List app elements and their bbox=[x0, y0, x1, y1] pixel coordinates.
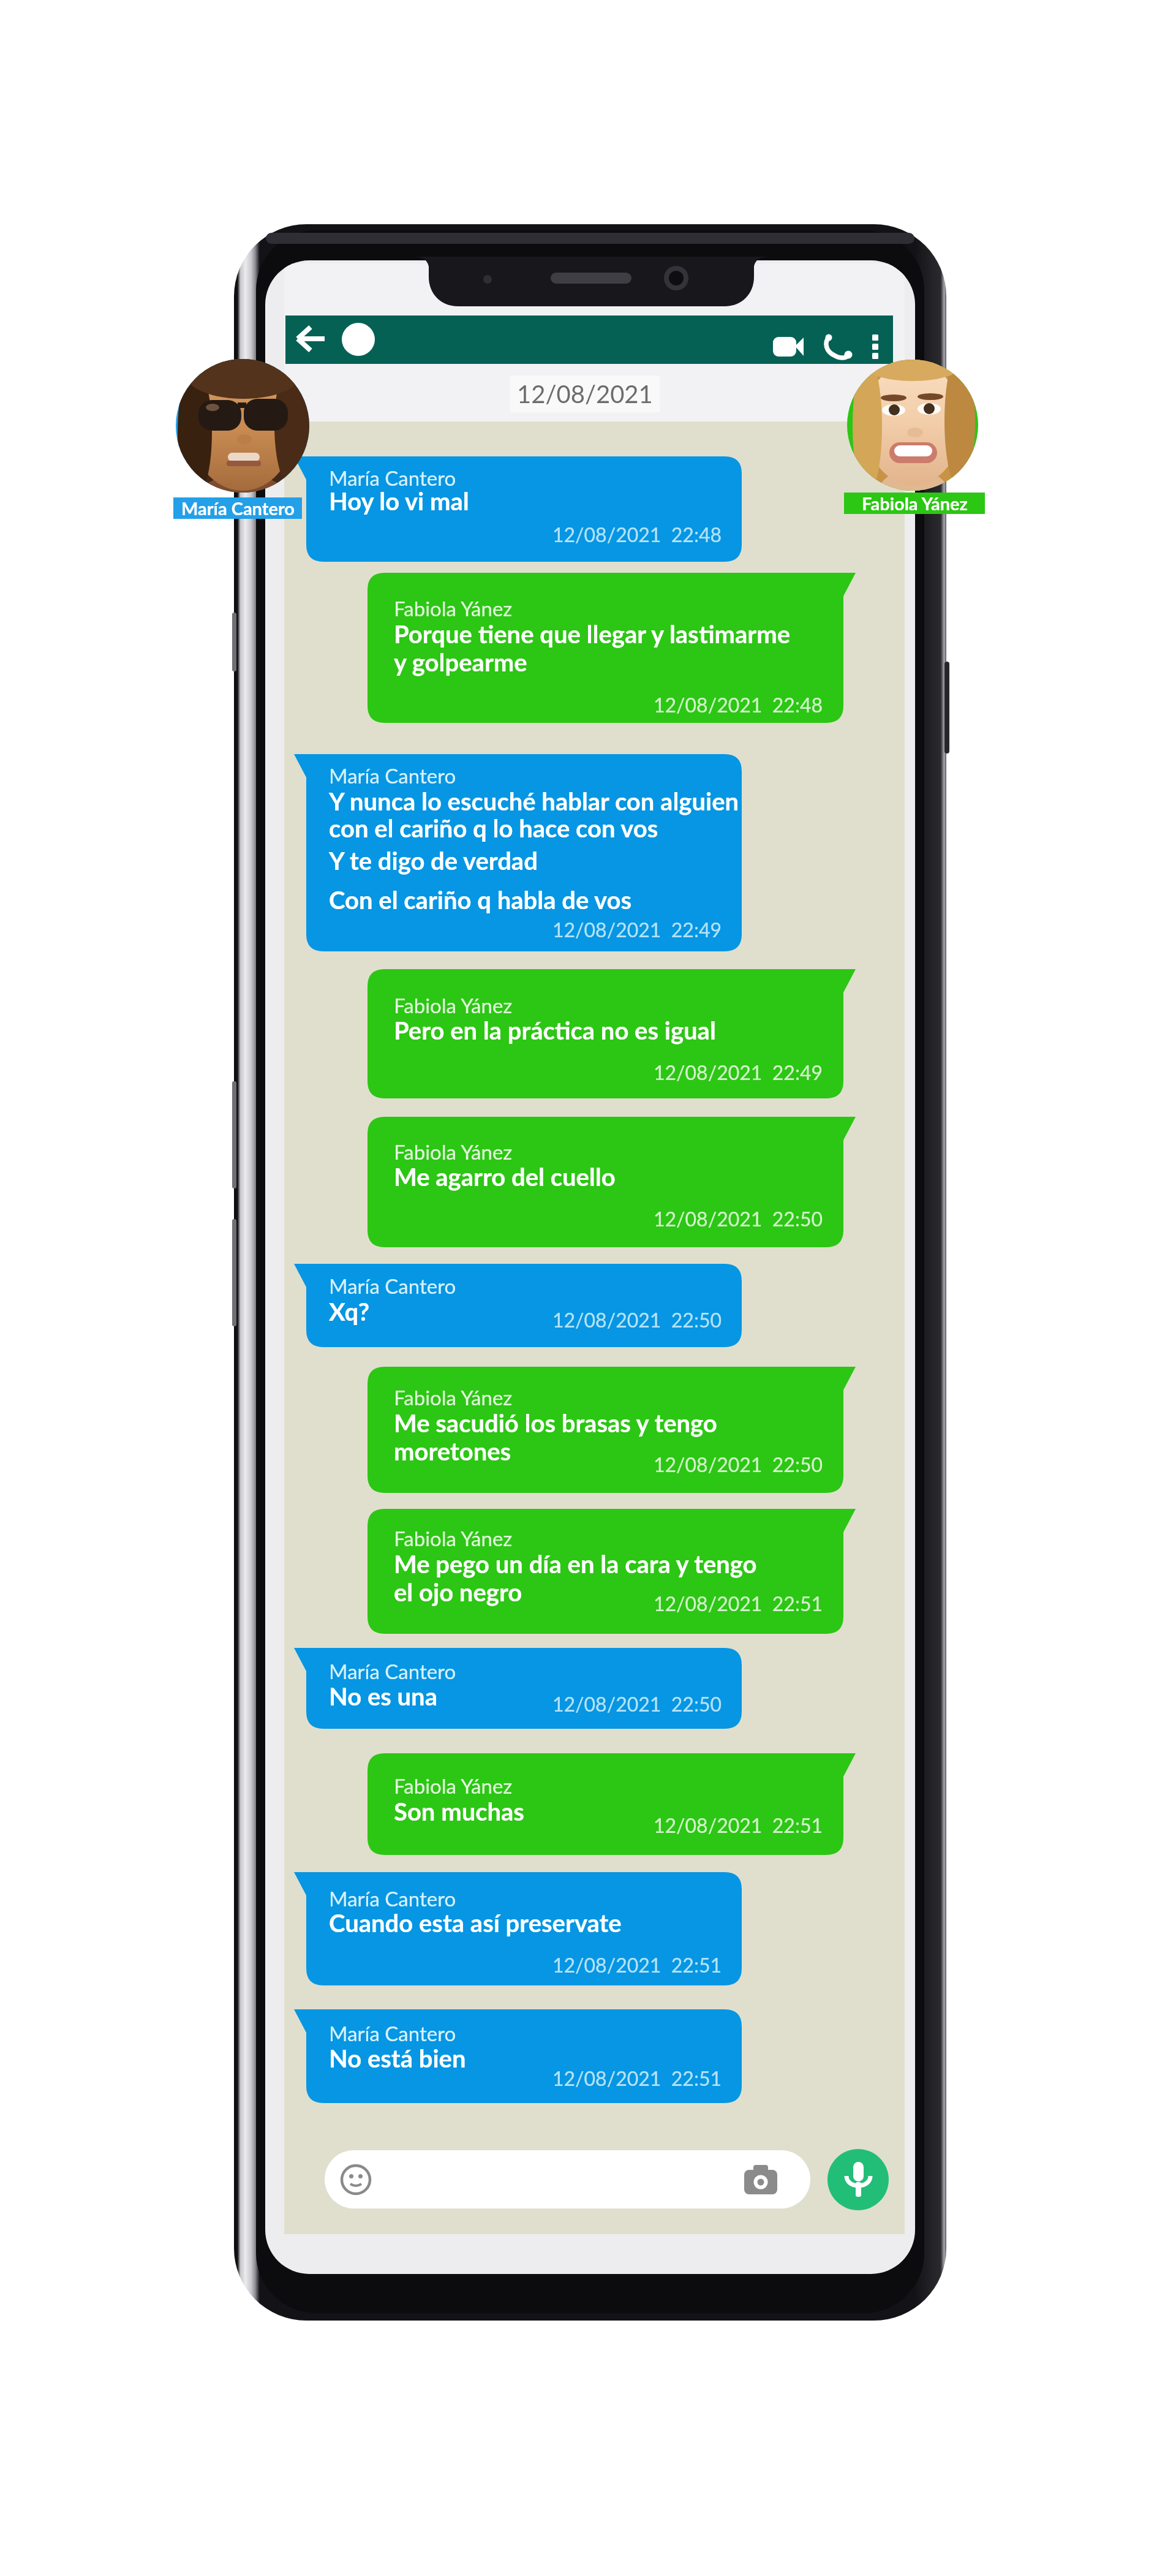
staticText: María Cantero bbox=[329, 1274, 456, 1298]
staticText: Y te digo de verdad bbox=[329, 846, 538, 875]
staticText: No está bien bbox=[329, 2044, 466, 2073]
staticText: 12/08/2021 22:50 bbox=[565, 1452, 823, 1486]
staticText: 12/08/2021 22:51 bbox=[565, 1592, 823, 1625]
button[interactable] bbox=[306, 754, 742, 951]
staticText: y golpearme bbox=[394, 648, 527, 677]
staticText: Con el cariño q habla de vos bbox=[329, 885, 632, 915]
staticText: 12/08/2021 22:51 bbox=[464, 2066, 722, 2099]
staticText: Fabiola Yánez bbox=[394, 993, 513, 1018]
button[interactable]: Contact profile bbox=[338, 319, 379, 359]
staticText: 12/08/2021 22:50 bbox=[565, 1207, 823, 1240]
button[interactable] bbox=[306, 1264, 742, 1347]
staticText: Y nunca lo escuché hablar con alguien bbox=[329, 787, 739, 816]
button[interactable] bbox=[367, 1753, 843, 1855]
staticText: 12/08/2021 22:48 bbox=[565, 693, 823, 726]
staticText: 12/08/2021 22:49 bbox=[565, 1060, 823, 1093]
button[interactable]: Message input bbox=[324, 2151, 804, 2212]
staticText: Me pego un día en la cara y tengo bbox=[394, 1549, 757, 1579]
button[interactable]: María Cantero bbox=[173, 497, 302, 519]
staticText: el ojo negro bbox=[394, 1577, 522, 1607]
staticText: 12/08/2021 22:50 bbox=[464, 1308, 722, 1341]
staticText: 12/08/2021 22:50 bbox=[464, 1692, 722, 1725]
button[interactable] bbox=[367, 1367, 843, 1493]
staticText: Fabiola Yánez bbox=[394, 596, 513, 621]
staticText: Fabiola Yánez bbox=[394, 1385, 513, 1410]
staticText: 12/08/2021 22:48 bbox=[464, 523, 722, 556]
staticText: No es una bbox=[329, 1682, 437, 1711]
staticText: María Cantero bbox=[329, 763, 456, 788]
staticText: Hoy lo vi mal bbox=[329, 486, 469, 516]
staticText: con el cariño q lo hace con vos bbox=[329, 814, 658, 843]
staticText: Pero en la práctica no es igual bbox=[394, 1016, 716, 1045]
staticText: Fabiola Yánez bbox=[862, 493, 968, 514]
button[interactable]: Back bbox=[292, 317, 334, 360]
button[interactable] bbox=[367, 1509, 843, 1634]
staticText: 12/08/2021 22:51 bbox=[565, 1813, 823, 1846]
staticText: María Cantero bbox=[329, 1886, 456, 1911]
staticText: Son muchas bbox=[394, 1797, 524, 1826]
button[interactable]: Fabiola Yánez bbox=[844, 493, 985, 514]
button[interactable] bbox=[367, 1117, 843, 1247]
button[interactable] bbox=[306, 1648, 742, 1729]
staticText: 12/08/2021 bbox=[517, 379, 653, 409]
button[interactable] bbox=[367, 969, 843, 1098]
staticText: moretones bbox=[394, 1437, 511, 1466]
button[interactable]: Video call bbox=[755, 317, 800, 363]
staticText: Xq? bbox=[329, 1297, 370, 1326]
button[interactable]: Record voice message bbox=[824, 2147, 894, 2216]
staticText: 12/08/2021 22:49 bbox=[464, 918, 722, 951]
staticText: Fabiola Yánez bbox=[394, 1773, 513, 1798]
staticText: Fabiola Yánez bbox=[394, 1139, 513, 1164]
staticText: Me agarro del cuello bbox=[394, 1162, 616, 1192]
staticText: Cuando esta así preservate bbox=[329, 1908, 622, 1938]
staticText: María Cantero bbox=[329, 466, 456, 490]
button[interactable]: Voice call bbox=[813, 317, 859, 363]
button[interactable] bbox=[306, 1872, 742, 1985]
button[interactable] bbox=[306, 456, 742, 562]
staticText: María Cantero bbox=[329, 2021, 456, 2045]
button[interactable] bbox=[306, 2009, 742, 2103]
staticText: María Cantero bbox=[181, 497, 295, 519]
staticText: Fabiola Yánez bbox=[394, 1526, 513, 1551]
staticText: 12/08/2021 22:51 bbox=[464, 1953, 722, 1986]
staticText: Me sacudió los brasas y tengo bbox=[394, 1408, 717, 1438]
button[interactable]: More options bbox=[860, 317, 897, 354]
staticText: Porque tiene que llegar y lastimarme bbox=[394, 619, 791, 649]
button[interactable] bbox=[367, 573, 843, 723]
staticText: María Cantero bbox=[329, 1659, 456, 1683]
